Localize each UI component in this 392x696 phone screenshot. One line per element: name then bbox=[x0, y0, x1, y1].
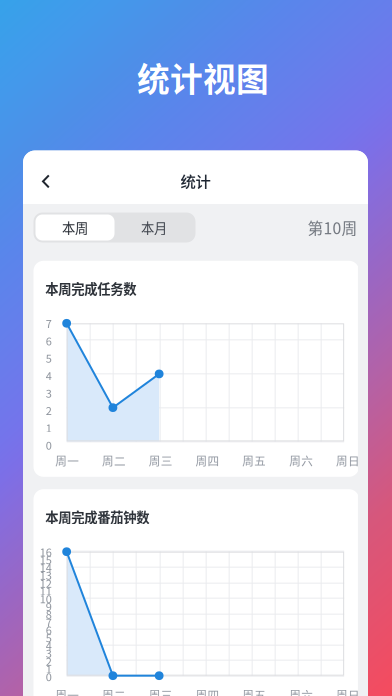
staticText: 0 bbox=[46, 669, 52, 684]
staticText: 4 bbox=[46, 637, 52, 653]
staticText: 周日 bbox=[336, 452, 360, 469]
button[interactable]: 本周 bbox=[35, 214, 114, 240]
staticText: 1 bbox=[46, 420, 52, 436]
staticText: 12 bbox=[40, 575, 52, 591]
staticText: 7 bbox=[46, 315, 52, 331]
staticText: 8 bbox=[46, 606, 52, 622]
staticText: 3 bbox=[46, 645, 52, 661]
staticText: 周二 bbox=[102, 452, 126, 469]
staticText: 4 bbox=[46, 368, 52, 383]
button[interactable]: 本月 bbox=[114, 214, 193, 240]
staticText: 7 bbox=[46, 614, 52, 630]
staticText: 周二 bbox=[102, 686, 126, 696]
staticText: 2 bbox=[46, 402, 52, 418]
staticText: 13 bbox=[40, 567, 52, 583]
staticText: 本周完成番茄钟数 bbox=[45, 507, 149, 526]
staticText: 周日 bbox=[336, 686, 360, 696]
staticText: 6 bbox=[46, 333, 52, 349]
staticText: 周四 bbox=[196, 452, 220, 469]
staticText: 本周完成任务数 bbox=[45, 279, 136, 298]
staticText: 统计 bbox=[180, 170, 210, 192]
staticText: 9 bbox=[46, 598, 52, 614]
staticText: 16 bbox=[40, 544, 52, 560]
staticText: 周一 bbox=[55, 686, 79, 696]
button[interactable]: Back bbox=[23, 150, 69, 204]
staticText: 周五 bbox=[242, 452, 266, 469]
staticText: 周三 bbox=[149, 452, 173, 469]
staticText: 周四 bbox=[196, 686, 220, 696]
staticText: 周三 bbox=[149, 686, 173, 696]
staticText: 周一 bbox=[55, 452, 79, 469]
staticText: 周六 bbox=[289, 686, 313, 696]
staticText: 本周 bbox=[62, 218, 88, 237]
staticText: 5 bbox=[46, 350, 52, 366]
staticText: 10 bbox=[40, 591, 52, 606]
staticText: 第10周 bbox=[307, 216, 357, 239]
staticText: 15 bbox=[40, 552, 52, 567]
staticText: 11 bbox=[40, 583, 52, 599]
staticText: 5 bbox=[46, 630, 52, 645]
staticText: 周五 bbox=[242, 686, 266, 696]
staticText: 6 bbox=[46, 622, 52, 638]
staticText: 2 bbox=[46, 653, 52, 669]
staticText: 统计视图 bbox=[137, 53, 269, 101]
staticText: 本月 bbox=[141, 218, 167, 237]
staticText: 3 bbox=[46, 385, 52, 401]
staticText: 0 bbox=[46, 437, 52, 453]
staticText: 周六 bbox=[289, 452, 313, 469]
staticText: 1 bbox=[46, 661, 52, 677]
staticText: 14 bbox=[40, 559, 52, 575]
